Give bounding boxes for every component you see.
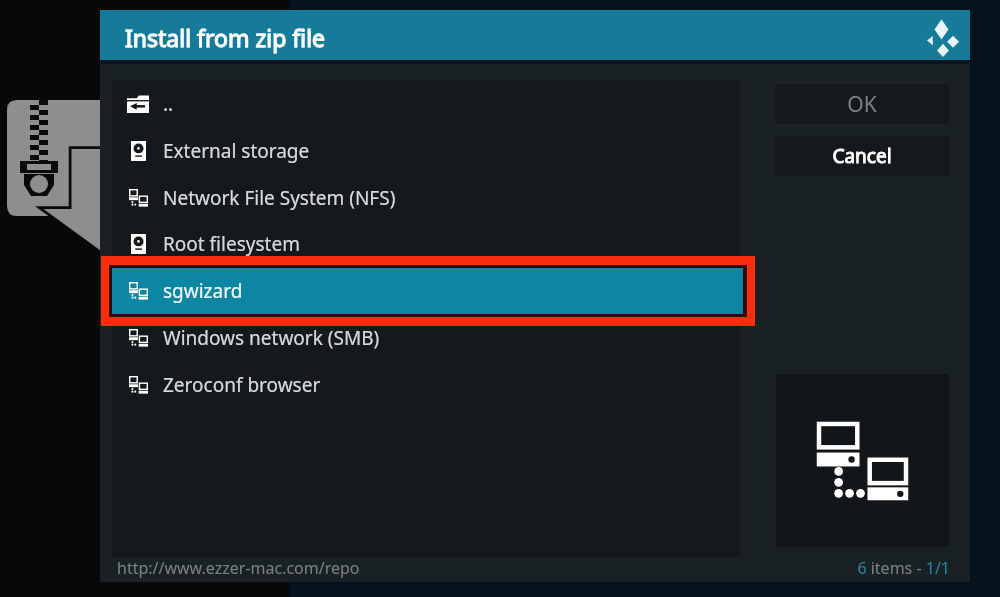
staticText: Root filesystem	[163, 231, 300, 257]
button[interactable]: sgwizard	[112, 268, 740, 314]
staticText: sgwizard	[163, 278, 243, 304]
button[interactable]: Cancel	[775, 136, 949, 176]
staticText: Windows network (SMB)	[163, 325, 380, 351]
staticText: OK	[847, 90, 877, 119]
button[interactable]: Network File System (NFS)	[112, 175, 740, 221]
staticText: Network File System (NFS)	[163, 185, 396, 211]
button[interactable]: Root filesystem	[112, 221, 740, 267]
button[interactable]: Install from zip file	[100, 10, 970, 60]
button[interactable]: OK	[775, 84, 949, 124]
staticText: Install from zip file	[125, 22, 326, 53]
staticText: Cancel	[832, 143, 892, 169]
button[interactable]: Kodi home	[920, 12, 962, 54]
button[interactable]: Windows network (SMB)	[112, 315, 740, 361]
button[interactable]: Zeroconf browser	[112, 362, 740, 408]
staticText: 6 items - 1/1	[798, 557, 950, 579]
button[interactable]: External storage	[112, 128, 740, 174]
staticText: ..	[163, 91, 174, 117]
staticText: External storage	[163, 138, 310, 164]
staticText: http://www.ezzer-mac.com/repo	[117, 557, 360, 579]
button[interactable]: ..	[112, 81, 740, 127]
staticText: Zeroconf browser	[163, 372, 321, 398]
